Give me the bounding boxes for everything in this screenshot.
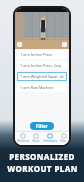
staticText: 1 arm Row Machine xyxy=(20,85,54,90)
button[interactable]: Filter xyxy=(30,122,54,130)
button[interactable]: Workouts xyxy=(16,133,30,143)
button[interactable]: 1 arm Row Machine xyxy=(17,83,67,92)
button[interactable]: 1 arm Incline Press xyxy=(17,50,67,59)
staticText: More xyxy=(60,139,67,143)
button[interactable]: Techniques xyxy=(42,133,58,143)
staticText: 1 arm Incline Press, Grip xyxy=(20,63,62,68)
staticText: Music xyxy=(32,139,40,143)
button[interactable]: More xyxy=(59,133,68,143)
staticText: Workouts xyxy=(17,139,29,143)
staticText: 1 arm Incline Press xyxy=(20,52,53,57)
button[interactable]: Mute xyxy=(17,42,22,47)
staticText: PERSONALIZED xyxy=(9,151,75,162)
staticText: Filter xyxy=(36,123,48,129)
button[interactable]: 1 arm Weighted Squat, alt xyxy=(17,72,67,81)
button[interactable]: Fullscreen xyxy=(62,42,67,47)
staticText: WORKOUT PLAN xyxy=(7,163,78,174)
staticText: Techniques xyxy=(43,139,57,143)
button[interactable]: Music xyxy=(31,133,41,143)
button[interactable]: 1 arm Incline Press, Grip xyxy=(17,61,67,70)
staticText: 1 arm Weighted Squat, alt xyxy=(20,74,64,79)
